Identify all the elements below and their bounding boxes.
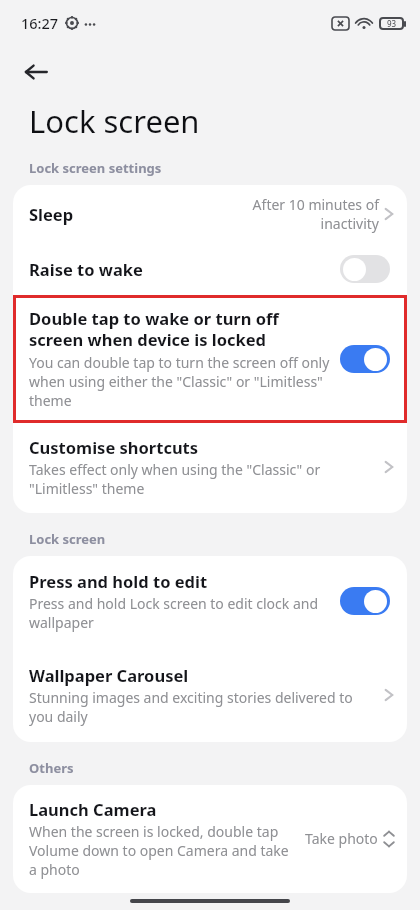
- staticText: Customise shortcuts: [29, 436, 199, 458]
- button[interactable]: Double tap to wake or turn off screen wh…: [13, 295, 407, 423]
- staticText: Lock screen: [29, 530, 106, 548]
- button[interactable]: Press and hold to edit: [13, 556, 407, 646]
- button[interactable]: Wallpaper Carousel: [13, 664, 407, 742]
- staticText: Stunning images and exciting stories del…: [29, 688, 375, 726]
- button[interactable]: Raise to wake: [13, 243, 407, 295]
- staticText: 16:27: [21, 13, 59, 33]
- staticText: Lock screen settings: [29, 159, 162, 177]
- staticText: Launch Camera: [29, 798, 157, 820]
- button[interactable]: Toggle on: [340, 345, 390, 373]
- staticText: After 10 minutes of inactivity: [239, 195, 379, 233]
- staticText: Lock screen: [29, 100, 200, 142]
- staticText: When the screen is locked, double tap Vo…: [29, 822, 297, 879]
- staticText: Takes effect only when using the "Classi…: [29, 460, 375, 498]
- staticText: Others: [29, 759, 74, 777]
- button[interactable]: Back: [10, 46, 62, 98]
- staticText: Take photo: [305, 829, 378, 848]
- button[interactable]: Launch Camera: [13, 785, 407, 893]
- staticText: You can double tap to turn the screen of…: [29, 353, 330, 410]
- staticText: 93: [387, 18, 397, 29]
- staticText: Sleep: [29, 203, 74, 225]
- staticText: Wallpaper Carousel: [29, 664, 189, 686]
- staticText: Double tap to wake or turn off screen wh…: [29, 307, 330, 351]
- staticText: Raise to wake: [29, 258, 143, 280]
- staticText: Press and hold to edit: [29, 570, 208, 592]
- button[interactable]: Customise shortcuts: [13, 423, 407, 513]
- button[interactable]: Toggle on: [340, 587, 390, 615]
- button[interactable]: Sleep: [13, 185, 407, 243]
- button[interactable]: Toggle off: [340, 255, 390, 283]
- staticText: Press and hold Lock screen to edit clock…: [29, 594, 330, 632]
